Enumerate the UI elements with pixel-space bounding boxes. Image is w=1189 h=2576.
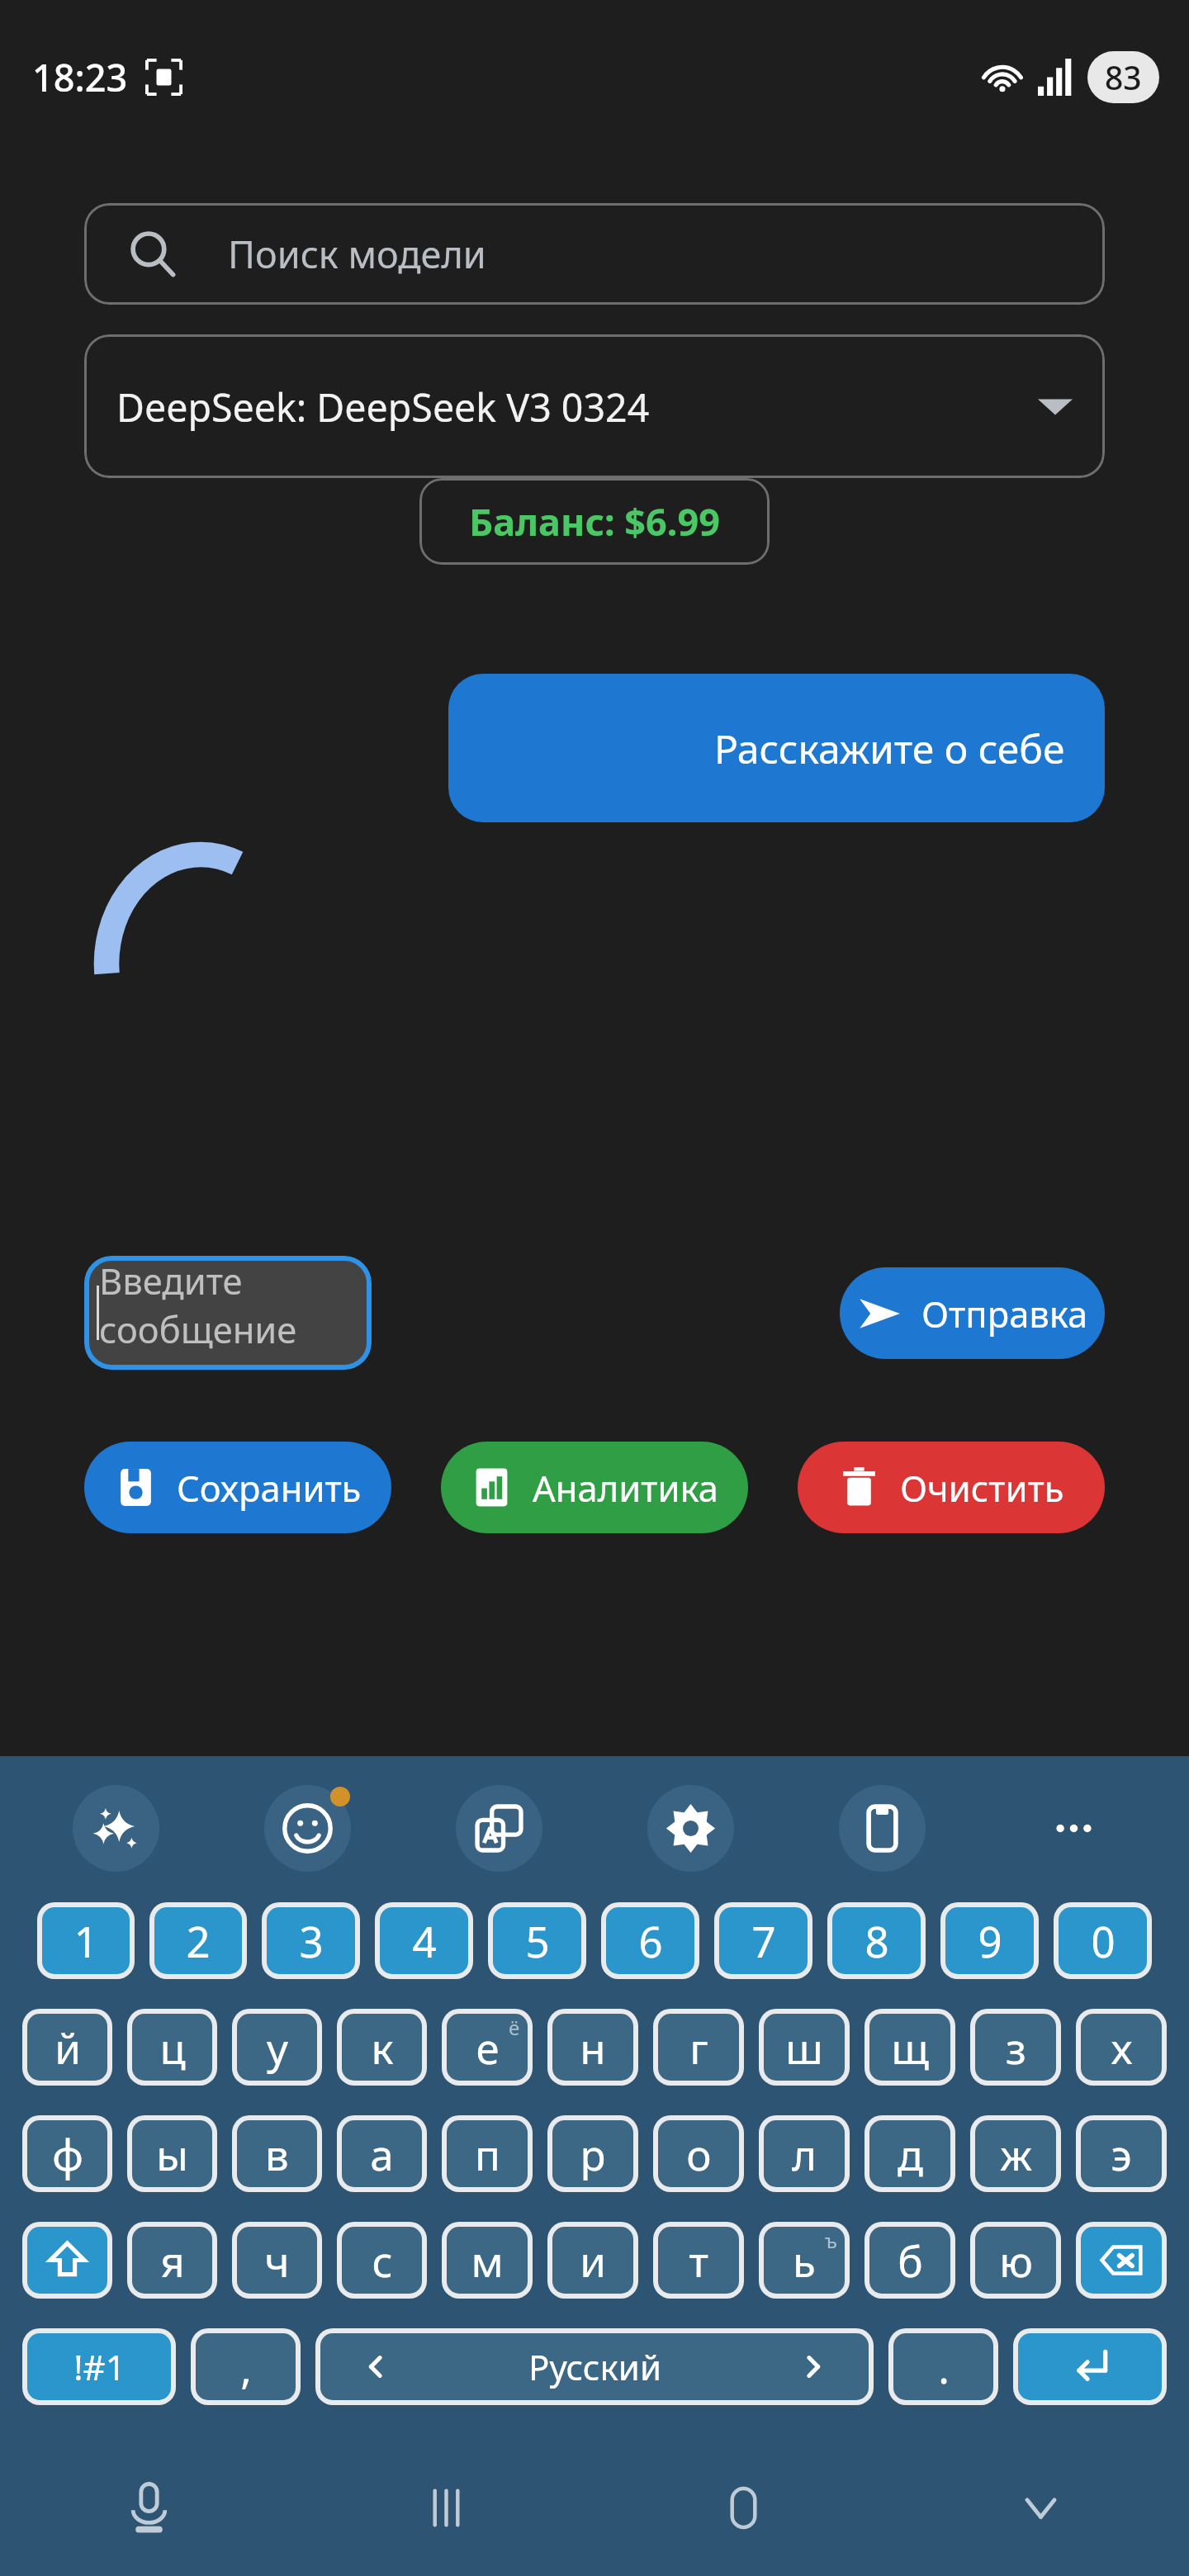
button[interactable]: я — [132, 2227, 212, 2294]
staticText: Поиск модели — [228, 229, 486, 279]
staticText: в — [265, 2125, 289, 2182]
staticText: 0 — [1091, 1912, 1116, 1969]
button[interactable]: ч — [237, 2227, 317, 2294]
button[interactable]: Settings — [594, 1781, 786, 1875]
button[interactable]: Voice input — [0, 2440, 297, 2576]
button[interactable]: у — [237, 2014, 317, 2081]
button[interactable]: ц — [132, 2014, 212, 2081]
button[interactable]: ш — [764, 2014, 845, 2081]
button[interactable]: ы — [132, 2120, 212, 2187]
button[interactable]: л — [764, 2120, 845, 2187]
button[interactable]: с — [342, 2227, 422, 2294]
staticText: щ — [891, 2019, 929, 2076]
staticText: р — [580, 2125, 606, 2182]
button[interactable]: ф — [27, 2120, 107, 2187]
button[interactable]: Translate — [403, 1781, 594, 1875]
staticText: . — [938, 2338, 950, 2395]
staticText: 5 — [525, 1912, 550, 1969]
button[interactable]: 9 — [945, 1907, 1034, 1974]
button[interactable]: й — [27, 2014, 107, 2081]
button[interactable]: э — [1081, 2120, 1162, 2187]
button[interactable]: Русский — [320, 2333, 869, 2400]
button[interactable]: , — [196, 2333, 296, 2400]
staticText: 3 — [299, 1912, 324, 1969]
staticText: й — [54, 2019, 81, 2076]
button[interactable]: д — [869, 2120, 950, 2187]
staticText: п — [475, 2125, 500, 2182]
button[interactable]: Backspace — [1081, 2227, 1162, 2294]
button[interactable]: Emoji — [211, 1781, 403, 1875]
button[interactable]: к — [342, 2014, 422, 2081]
button[interactable]: р — [552, 2120, 633, 2187]
button[interactable]: More — [978, 1781, 1169, 1875]
button[interactable]: щ — [869, 2014, 950, 2081]
button[interactable]: Recents — [297, 2440, 594, 2576]
staticText: ш — [785, 2019, 823, 2076]
button[interactable]: а — [342, 2120, 422, 2187]
button[interactable]: 1 — [42, 1907, 130, 1974]
staticText: м — [471, 2232, 504, 2289]
staticText: 1 — [73, 1912, 98, 1969]
staticText: 6 — [638, 1912, 663, 1969]
staticText: а — [370, 2125, 394, 2182]
staticText: з — [1006, 2019, 1026, 2076]
button[interactable]: 2 — [154, 1907, 242, 1974]
staticText: 7 — [751, 1912, 776, 1969]
button[interactable]: Clipboard — [786, 1781, 978, 1875]
button[interactable]: !#1 — [27, 2333, 171, 2400]
button[interactable]: 4 — [380, 1907, 468, 1974]
button[interactable]: Assistant — [20, 1781, 211, 1875]
button[interactable]: Shift — [27, 2227, 107, 2294]
button[interactable]: Аналитика — [441, 1442, 748, 1533]
button[interactable]: е — [447, 2014, 528, 2081]
button[interactable]: . — [893, 2333, 993, 2400]
staticText: 2 — [186, 1912, 211, 1969]
button[interactable]: Очистить — [798, 1442, 1105, 1533]
button[interactable]: 6 — [606, 1907, 694, 1974]
button[interactable]: Поиск модели — [84, 203, 1105, 305]
button[interactable]: х — [1081, 2014, 1162, 2081]
staticText: ч — [264, 2232, 290, 2289]
button[interactable]: ь — [764, 2227, 845, 2294]
button[interactable]: Расскажите о себе — [448, 674, 1105, 822]
button[interactable]: н — [552, 2014, 633, 2081]
button[interactable]: 5 — [493, 1907, 581, 1974]
button[interactable]: ж — [975, 2120, 1056, 2187]
button[interactable]: з — [975, 2014, 1056, 2081]
staticText: ф — [52, 2125, 83, 2182]
button[interactable]: о — [658, 2120, 739, 2187]
staticText: э — [1111, 2125, 1132, 2182]
staticText: л — [792, 2125, 817, 2182]
staticText: 8 — [865, 1912, 889, 1969]
staticText: 18:23 — [32, 52, 128, 102]
button[interactable]: 0 — [1059, 1907, 1147, 1974]
button[interactable]: ю — [975, 2227, 1056, 2294]
button[interactable]: Отправка — [840, 1267, 1105, 1359]
button[interactable]: 3 — [267, 1907, 355, 1974]
button[interactable]: г — [658, 2014, 739, 2081]
staticText: , — [240, 2338, 252, 2395]
button[interactable]: т — [658, 2227, 739, 2294]
button[interactable]: м — [447, 2227, 528, 2294]
button[interactable]: 8 — [832, 1907, 921, 1974]
staticText: Сохранить — [177, 1463, 362, 1512]
button[interactable]: Home — [594, 2440, 892, 2576]
staticText: Аналитика — [533, 1463, 718, 1512]
staticText: 9 — [978, 1912, 1002, 1969]
button[interactable]: Сохранить — [84, 1442, 391, 1533]
button[interactable]: в — [237, 2120, 317, 2187]
button[interactable]: Hide keyboard — [892, 2440, 1189, 2576]
button[interactable]: п — [447, 2120, 528, 2187]
button[interactable]: Введите сообщение здесь... — [84, 1256, 372, 1370]
staticText: я — [160, 2232, 185, 2289]
button[interactable]: б — [869, 2227, 950, 2294]
button[interactable]: Баланс: $6.99 — [419, 478, 770, 565]
staticText: Очистить — [900, 1463, 1064, 1512]
button[interactable]: 7 — [719, 1907, 808, 1974]
button[interactable]: DeepSeek: DeepSeek V3 0324 — [84, 334, 1105, 478]
button[interactable]: и — [552, 2227, 633, 2294]
button[interactable]: Enter — [1018, 2333, 1162, 2400]
staticText: с — [372, 2232, 393, 2289]
staticText: Расскажите о себе — [714, 722, 1065, 775]
staticText: Баланс: $6.99 — [469, 496, 720, 547]
